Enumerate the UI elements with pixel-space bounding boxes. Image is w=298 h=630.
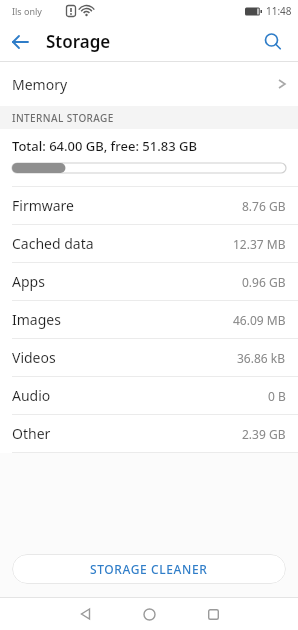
button[interactable]: Images	[0, 301, 298, 338]
button[interactable]	[181, 598, 245, 630]
staticText: 0.96 GB	[242, 274, 286, 290]
staticText: Audio	[12, 386, 51, 405]
staticText: Total: 64.00 GB, free: 51.83 GB	[12, 137, 197, 155]
button[interactable]	[0, 22, 40, 61]
staticText: Apps	[12, 272, 45, 291]
button[interactable]: Audio	[0, 377, 298, 414]
staticText: 36.86 kB	[237, 350, 286, 366]
button[interactable]: Memory	[0, 62, 298, 106]
staticText: 2.39 GB	[242, 426, 286, 442]
button[interactable]: Firmware	[0, 187, 298, 224]
staticText: STORAGE CLEANER	[90, 561, 208, 577]
button[interactable]	[253, 22, 293, 61]
button[interactable]: Videos	[0, 339, 298, 376]
button[interactable]	[117, 598, 181, 630]
button[interactable]	[53, 598, 117, 630]
staticText: Images	[12, 310, 61, 329]
staticText: Other	[12, 424, 51, 443]
button[interactable]: Other	[0, 415, 298, 452]
staticText: 0 B	[268, 388, 286, 404]
staticText: Firmware	[12, 196, 75, 215]
button[interactable]: Cached data	[0, 225, 298, 262]
staticText: Memory	[12, 75, 68, 94]
staticText: Videos	[12, 348, 56, 367]
button[interactable]: Apps	[0, 263, 298, 300]
staticText: Ils only	[12, 5, 42, 17]
staticText: 11:48	[266, 4, 292, 18]
staticText: Cached data	[12, 234, 94, 253]
staticText: 12.37 MB	[233, 236, 286, 252]
button[interactable]: STORAGE CLEANER	[12, 554, 286, 584]
staticText: Storage	[46, 30, 111, 53]
staticText: 8.76 GB	[242, 198, 286, 214]
staticText: 46.09 MB	[233, 312, 286, 328]
staticText: INTERNAL STORAGE	[12, 111, 114, 125]
